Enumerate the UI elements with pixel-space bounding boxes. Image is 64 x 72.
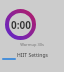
staticText: HIIT Settings: [17, 52, 48, 59]
staticText: 0:00: [11, 18, 31, 32]
staticText: Warmup 30s: [20, 42, 44, 47]
